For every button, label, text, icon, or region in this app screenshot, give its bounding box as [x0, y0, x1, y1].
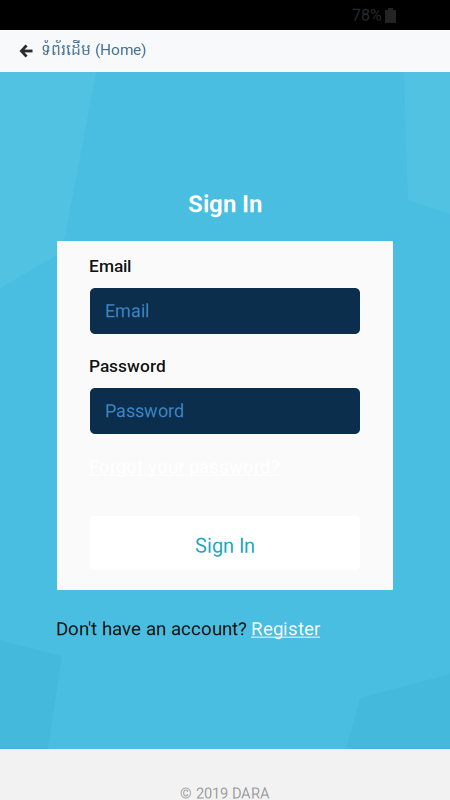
staticText: Don't have an account?	[56, 618, 252, 640]
staticText: Sign In	[195, 534, 255, 558]
button[interactable]: Register	[251, 618, 320, 640]
staticText: Password	[105, 400, 184, 422]
staticText: ទំព័រដើម (Home)	[41, 40, 146, 62]
staticText: © 2019 DARA	[180, 785, 270, 800]
staticText: 78%	[352, 6, 382, 25]
staticText: Password	[89, 356, 166, 376]
staticText: Email	[105, 300, 149, 322]
button[interactable]: Password	[90, 388, 360, 434]
staticText: Sign In	[188, 190, 262, 218]
button[interactable]: Back	[9, 34, 43, 68]
button[interactable]: Email	[90, 288, 360, 334]
staticText: Register	[251, 618, 320, 640]
staticText: Email	[89, 256, 131, 276]
button[interactable]: Sign In	[90, 516, 360, 570]
